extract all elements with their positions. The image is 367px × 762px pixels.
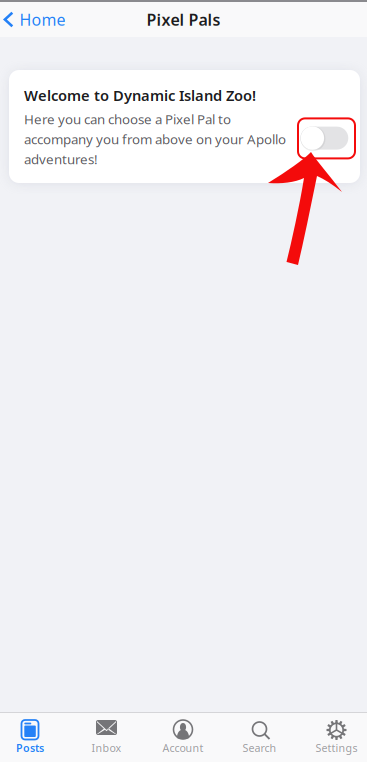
staticText: Inbox	[91, 741, 121, 755]
button[interactable]: Home	[0, 3, 65, 36]
button[interactable]: Settings	[298, 713, 367, 762]
staticText: Posts	[16, 741, 44, 755]
staticText: Settings	[315, 741, 357, 755]
staticText: Account	[162, 741, 203, 755]
button[interactable]: Posts	[0, 713, 68, 762]
staticText: Here you can choose a Pixel Pal to	[24, 110, 231, 128]
staticText: Home	[19, 9, 65, 30]
staticText: accompany you from above on your Apollo	[24, 130, 286, 148]
button[interactable]: Search	[221, 713, 297, 762]
staticText: Pixel Pals	[146, 9, 220, 30]
button[interactable]: Toggle Pixel Pal	[298, 118, 355, 158]
button[interactable]: Account	[145, 713, 221, 762]
staticText: Welcome to Dynamic Island Zoo!	[24, 85, 256, 105]
button[interactable]: Inbox	[68, 713, 144, 762]
staticText: Search	[242, 741, 276, 755]
staticText: adventures!	[24, 150, 98, 168]
